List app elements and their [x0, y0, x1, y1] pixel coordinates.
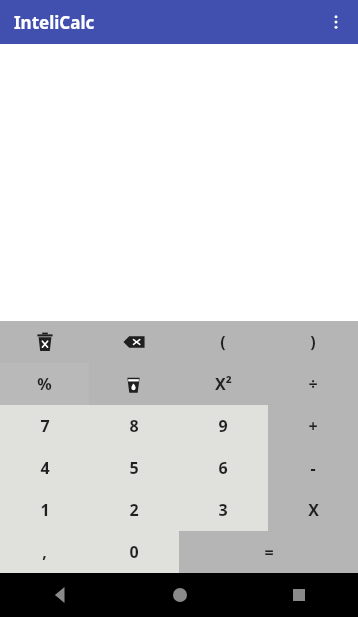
button[interactable]: X — [268, 489, 358, 531]
staticText: 1 — [40, 499, 50, 521]
staticText: - — [310, 457, 316, 479]
button[interactable]: 5 — [89, 447, 178, 489]
staticText: 5 — [129, 457, 139, 479]
button[interactable]: Back — [0, 573, 120, 617]
staticText: ÷ — [308, 373, 318, 395]
button[interactable]: 8 — [89, 405, 178, 447]
button[interactable]: ( — [178, 321, 268, 363]
button[interactable]: 0 — [89, 531, 179, 573]
staticText: ( — [220, 331, 226, 353]
staticText: 4 — [40, 457, 50, 479]
staticText: 6 — [218, 457, 228, 479]
button[interactable]: More options — [314, 0, 358, 44]
staticText: 0 — [129, 541, 139, 563]
button[interactable]: 9 — [178, 405, 268, 447]
button[interactable]: Recent apps — [239, 573, 358, 617]
button[interactable]: ) — [268, 321, 358, 363]
button[interactable]: Memory — [89, 363, 178, 405]
staticText: % — [37, 373, 52, 395]
staticText: = — [264, 541, 274, 563]
staticText: , — [42, 541, 47, 563]
staticText: X² — [215, 373, 232, 395]
staticText: X — [308, 499, 319, 521]
staticText: InteliCalc — [14, 11, 95, 34]
staticText: ) — [310, 331, 316, 353]
button[interactable]: 6 — [178, 447, 268, 489]
button[interactable]: - — [268, 447, 358, 489]
button[interactable]: X² — [178, 363, 268, 405]
button[interactable]: 4 — [0, 447, 89, 489]
staticText: 7 — [40, 415, 50, 437]
staticText: + — [308, 415, 318, 437]
staticText: 3 — [218, 499, 228, 521]
button[interactable]: 2 — [89, 489, 178, 531]
button[interactable]: = — [179, 531, 358, 573]
button[interactable]: + — [268, 405, 358, 447]
button[interactable]: 1 — [0, 489, 89, 531]
button[interactable]: Clear all — [0, 321, 89, 363]
button[interactable]: , — [0, 531, 89, 573]
staticText: 9 — [218, 415, 228, 437]
button[interactable]: 3 — [178, 489, 268, 531]
button[interactable]: ÷ — [268, 363, 358, 405]
staticText: 8 — [129, 415, 139, 437]
button[interactable]: % — [0, 363, 89, 405]
button[interactable]: Backspace — [89, 321, 178, 363]
button[interactable]: Home — [120, 573, 239, 617]
button[interactable]: 7 — [0, 405, 89, 447]
staticText: 2 — [129, 499, 139, 521]
